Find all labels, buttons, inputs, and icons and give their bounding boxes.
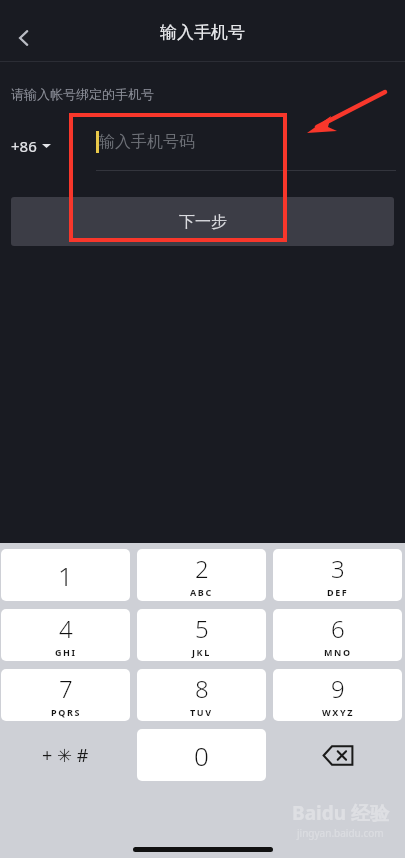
- staticText: 1: [58, 558, 73, 593]
- button[interactable]: 4: [1, 609, 130, 661]
- staticText: WXYZ: [322, 706, 354, 718]
- staticText: +86: [11, 136, 37, 156]
- button[interactable]: 9: [273, 669, 402, 721]
- button[interactable]: 输入手机号码: [90, 118, 390, 174]
- staticText: MNO: [324, 646, 352, 658]
- staticText: 请输入帐号绑定的手机号: [11, 86, 154, 102]
- staticText: 9: [331, 672, 345, 705]
- button[interactable]: 3: [273, 549, 402, 601]
- staticText: 4: [59, 612, 73, 645]
- button[interactable]: 6: [273, 609, 402, 661]
- staticText: 输入手机号: [160, 22, 245, 43]
- staticText: 输入手机号码: [99, 132, 195, 152]
- staticText: TUV: [190, 706, 213, 718]
- staticText: 7: [59, 672, 73, 705]
- button[interactable]: 0: [137, 729, 266, 781]
- button[interactable]: 7: [1, 669, 130, 721]
- staticText: GHI: [55, 646, 77, 658]
- staticText: ABC: [190, 586, 213, 598]
- staticText: Baidu 经验: [292, 800, 389, 826]
- staticText: 8: [195, 672, 209, 705]
- staticText: 2: [195, 552, 209, 585]
- button[interactable]: Back: [4, 18, 44, 58]
- staticText: 5: [195, 612, 209, 645]
- staticText: + ✳ #: [42, 743, 89, 768]
- staticText: PQRS: [51, 706, 81, 718]
- button[interactable]: Backspace: [273, 729, 402, 781]
- staticText: 6: [331, 612, 345, 645]
- button[interactable]: 1: [1, 549, 130, 601]
- button[interactable]: 下一步: [11, 197, 394, 246]
- button[interactable]: + ✳ #: [1, 729, 130, 781]
- staticText: 3: [331, 552, 345, 585]
- staticText: 下一步: [179, 212, 227, 232]
- button[interactable]: 8: [137, 669, 266, 721]
- button[interactable]: 2: [137, 549, 266, 601]
- staticText: 0: [194, 738, 209, 773]
- staticText: jingyan.baidu.com: [297, 826, 384, 840]
- staticText: DEF: [327, 586, 349, 598]
- button[interactable]: 5: [137, 609, 266, 661]
- staticText: JKL: [192, 646, 211, 658]
- button[interactable]: +86: [11, 136, 51, 156]
